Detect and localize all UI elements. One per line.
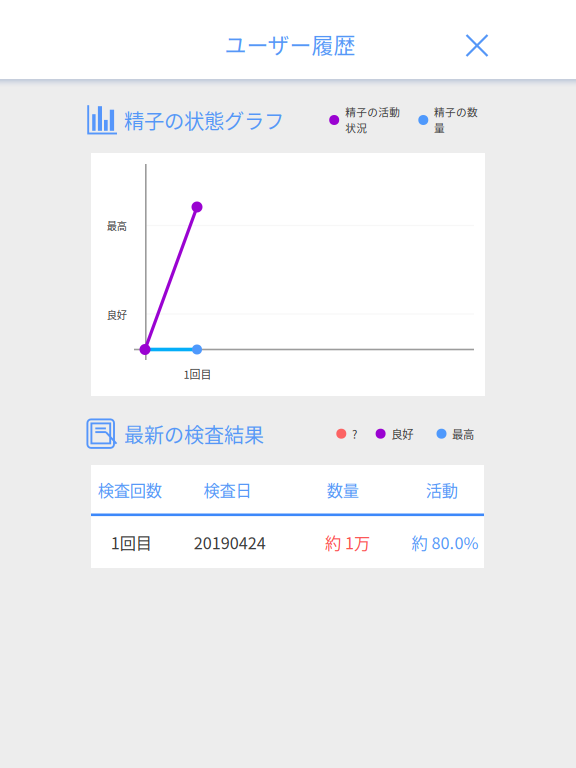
staticText: 約 1万 <box>325 530 370 554</box>
staticText: 状況 <box>345 120 367 135</box>
button[interactable]: Close <box>449 17 505 73</box>
staticText: 最高 <box>107 218 127 233</box>
staticText: 最高 <box>452 425 474 442</box>
staticText: 1回目 <box>111 530 152 554</box>
staticText: 約 80.0% <box>412 530 479 554</box>
staticText: ? <box>352 425 357 442</box>
staticText: 活動 <box>426 478 458 502</box>
staticText: 量 <box>434 120 445 135</box>
staticText: 数量 <box>327 478 359 502</box>
staticText: 検査日 <box>203 478 251 502</box>
staticText: 良好 <box>107 307 127 322</box>
staticText: 20190424 <box>194 530 266 554</box>
staticText: ユーザー履歴 <box>224 28 355 60</box>
staticText: 最新の検査結果 <box>124 419 264 448</box>
staticText: 検査回数 <box>98 478 162 502</box>
staticText: 良好 <box>391 425 413 442</box>
staticText: 精子の活動 <box>345 104 400 119</box>
staticText: 1回目 <box>183 366 211 382</box>
staticText: 精子の数 <box>434 104 478 119</box>
staticText: 精子の状態グラフ <box>124 105 284 135</box>
